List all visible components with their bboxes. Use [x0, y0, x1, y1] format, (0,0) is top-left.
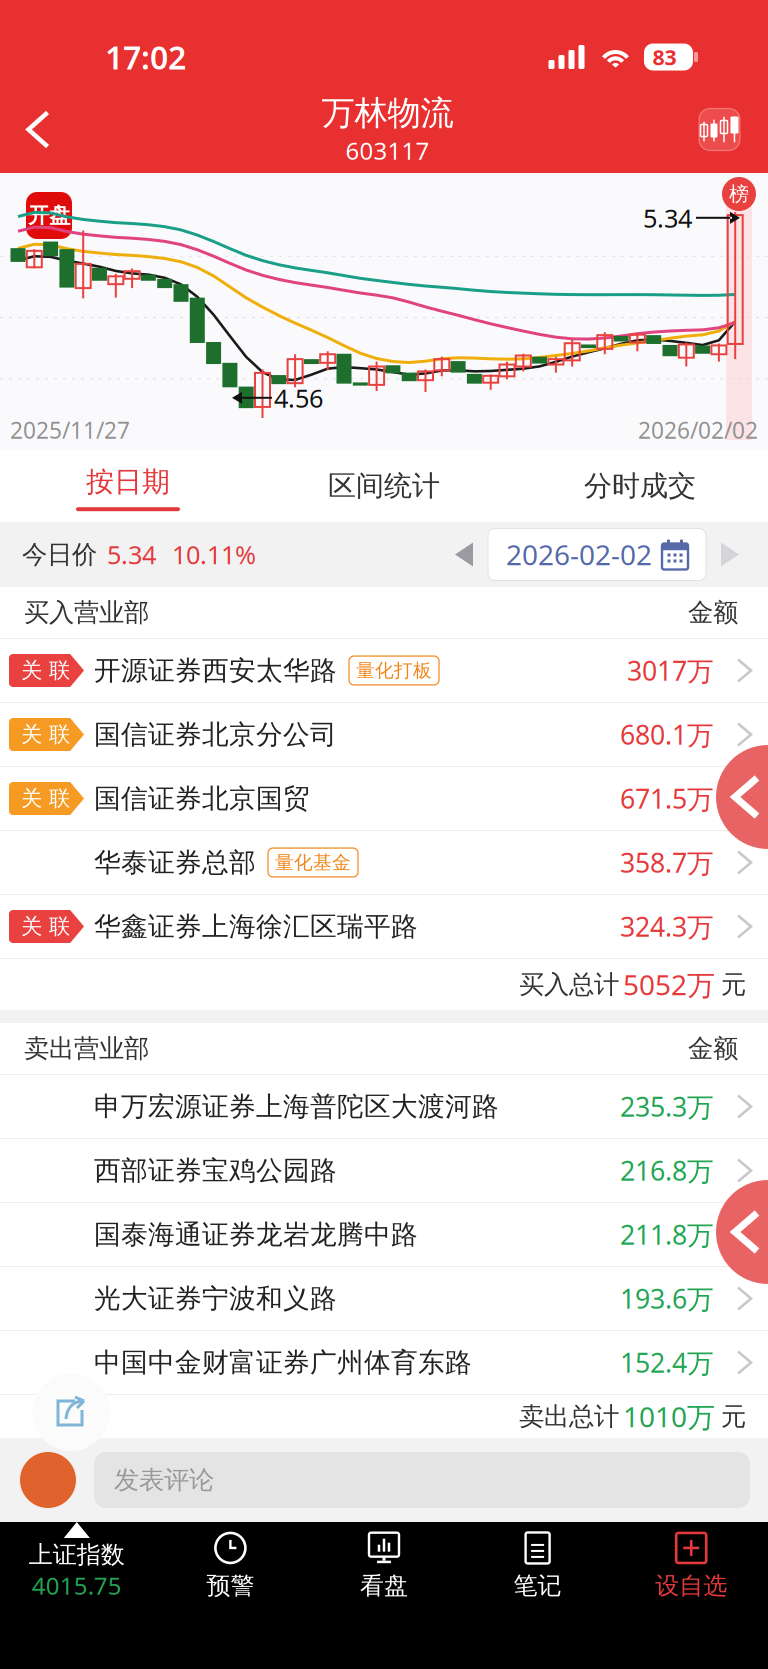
staticText: 671.5万: [620, 781, 714, 816]
button[interactable]: Next day: [706, 530, 754, 578]
staticText: 元: [721, 1401, 746, 1432]
button[interactable]: 按日期: [0, 451, 256, 521]
staticText: 联: [49, 657, 70, 684]
staticText: 235.3万: [620, 1089, 714, 1124]
staticText: 关: [21, 785, 42, 812]
staticText: 3017万: [627, 653, 714, 688]
staticText: 5052万: [623, 966, 715, 1003]
staticText: 华鑫证券上海徐汇区瑞平路: [94, 910, 418, 943]
staticText: 分时成交: [584, 469, 696, 503]
staticText: 国信证券北京分公司: [94, 718, 337, 751]
staticText: 笔记: [514, 1571, 562, 1600]
staticText: 华泰证券总部: [94, 846, 256, 879]
staticText: 量化基金: [275, 851, 351, 874]
staticText: 联: [49, 785, 70, 812]
staticText: 国信证券北京国贸: [94, 782, 310, 815]
staticText: 设自选: [655, 1571, 727, 1600]
button[interactable]: 预警: [154, 1523, 307, 1600]
staticText: 2026-02-02: [506, 536, 652, 573]
staticText: 榜: [729, 182, 749, 206]
staticText: 元: [721, 969, 746, 1000]
staticText: 联: [49, 913, 70, 940]
button[interactable]: 光大证券宁波和义路: [0, 1267, 768, 1331]
button[interactable]: 设自选: [614, 1523, 768, 1600]
staticText: 按日期: [86, 465, 170, 499]
staticText: 603117: [345, 134, 429, 166]
button[interactable]: 区间统计: [256, 450, 512, 522]
button[interactable]: Collapse panel: [716, 1180, 768, 1284]
staticText: 211.8万: [620, 1217, 714, 1252]
staticText: 开源证券西安太华路: [94, 654, 337, 687]
button[interactable]: K-line chart: [699, 108, 740, 150]
staticText: 联: [49, 721, 70, 748]
button[interactable]: 关: [0, 895, 768, 959]
button[interactable]: 关: [0, 639, 768, 703]
staticText: 金额: [688, 1033, 738, 1064]
staticText: 关: [21, 721, 42, 748]
staticText: 卖出营业部: [24, 1033, 149, 1064]
button[interactable]: 看盘: [307, 1523, 461, 1600]
staticText: 5.34: [643, 201, 692, 235]
staticText: 发表评论: [114, 1464, 214, 1495]
staticText: 万林物流: [321, 93, 453, 133]
staticText: 5.34: [107, 538, 156, 571]
button[interactable]: Collapse panel: [716, 745, 768, 849]
button[interactable]: Back: [0, 95, 76, 163]
staticText: 卖出总计: [519, 1401, 619, 1432]
staticText: 193.6万: [620, 1281, 714, 1316]
staticText: 2025/11/27: [10, 415, 130, 445]
staticText: 10.11%: [172, 538, 256, 571]
button[interactable]: 上证指数: [0, 1522, 154, 1601]
staticText: 关: [21, 913, 42, 940]
button[interactable]: Previous day: [440, 530, 488, 578]
staticText: 4.56: [274, 381, 323, 415]
staticText: 申万宏源证券上海普陀区大渡河路: [94, 1090, 499, 1123]
staticText: 324.3万: [620, 909, 714, 944]
staticText: 216.8万: [620, 1153, 714, 1188]
staticText: 1010万: [623, 1398, 715, 1435]
button[interactable]: 西部证券宝鸡公园路: [0, 1139, 768, 1203]
button[interactable]: Share: [32, 1373, 110, 1451]
staticText: 4015.75: [32, 1569, 122, 1601]
button[interactable]: 华泰证券总部: [0, 831, 768, 895]
staticText: 今日价: [22, 539, 97, 570]
staticText: 买入总计: [519, 969, 619, 1000]
button[interactable]: 申万宏源证券上海普陀区大渡河路: [0, 1075, 768, 1139]
staticText: 680.1万: [620, 717, 714, 752]
staticText: 量化打板: [356, 659, 432, 682]
staticText: 2026/02/02: [638, 415, 758, 445]
staticText: 国泰海通证券龙岩龙腾中路: [94, 1218, 418, 1251]
staticText: 金额: [688, 597, 738, 628]
button[interactable]: 2026-02-02: [488, 528, 706, 580]
staticText: 358.7万: [620, 845, 714, 880]
staticText: 盘: [49, 202, 70, 229]
staticText: 上证指数: [29, 1540, 125, 1569]
staticText: 买入营业部: [24, 597, 149, 628]
staticText: 关: [21, 657, 42, 684]
staticText: 西部证券宝鸡公园路: [94, 1154, 337, 1187]
button[interactable]: 笔记: [461, 1523, 614, 1600]
staticText: 152.4万: [620, 1345, 714, 1380]
staticText: 看盘: [360, 1571, 408, 1600]
button[interactable]: 关: [0, 703, 768, 767]
staticText: 开: [28, 202, 49, 229]
staticText: 17:02: [105, 36, 186, 78]
button[interactable]: 分时成交: [512, 450, 768, 522]
staticText: 中国中金财富证券广州体育东路: [94, 1346, 472, 1379]
staticText: 光大证券宁波和义路: [94, 1282, 337, 1315]
staticText: 预警: [206, 1571, 254, 1600]
staticText: 区间统计: [328, 469, 440, 503]
button[interactable]: 关: [0, 767, 768, 831]
button[interactable]: 国泰海通证券龙岩龙腾中路: [0, 1203, 768, 1267]
button[interactable]: 中国中金财富证券广州体育东路: [0, 1331, 768, 1395]
staticText: 83: [652, 43, 676, 71]
